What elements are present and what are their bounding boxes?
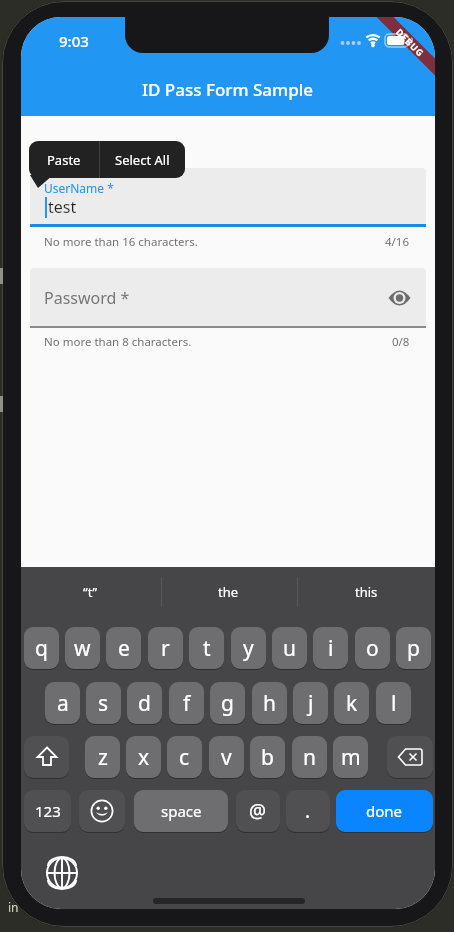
staticText: Password * <box>44 287 130 309</box>
staticText: 123 <box>35 801 61 821</box>
button[interactable]: m <box>333 736 368 778</box>
button[interactable] <box>30 268 426 326</box>
button[interactable]: t <box>189 627 224 669</box>
staticText: f <box>183 689 191 718</box>
button[interactable]: this <box>297 580 435 604</box>
staticText: UserName * <box>44 180 114 196</box>
staticText: i <box>328 634 334 663</box>
staticText: t <box>203 634 211 663</box>
button[interactable]: v <box>209 736 244 778</box>
staticText: a <box>57 689 69 718</box>
button[interactable]: q <box>24 627 59 669</box>
button[interactable]: p <box>396 627 431 669</box>
staticText: No more than 16 characters. <box>44 234 198 250</box>
staticText: s <box>98 689 109 718</box>
button[interactable]: l <box>376 682 411 724</box>
staticText: ID Pass Form Sample <box>142 78 314 101</box>
staticText: d <box>138 689 151 718</box>
staticText: q <box>35 634 48 663</box>
staticText: p <box>407 634 420 663</box>
button[interactable]: z <box>85 736 120 778</box>
button[interactable]: c <box>167 736 202 778</box>
button[interactable]: . <box>286 790 330 832</box>
staticText: 0/8 <box>392 334 410 350</box>
staticText: e <box>118 634 130 663</box>
staticText: b <box>261 743 274 772</box>
staticText: . <box>305 798 311 824</box>
button[interactable]: y <box>231 627 266 669</box>
button[interactable] <box>44 855 80 891</box>
staticText: l <box>391 689 397 718</box>
button[interactable]: w <box>65 627 100 669</box>
staticText: 4/16 <box>385 234 410 250</box>
staticText: y <box>243 634 254 663</box>
button[interactable]: n <box>292 736 327 778</box>
button[interactable] <box>79 790 125 832</box>
button[interactable] <box>30 168 426 224</box>
button[interactable]: u <box>272 627 307 669</box>
staticText: k <box>346 689 358 718</box>
staticText: n <box>303 743 316 772</box>
button[interactable]: Paste <box>29 141 99 178</box>
staticText: j <box>308 689 314 718</box>
button[interactable]: Select All <box>100 141 185 178</box>
button[interactable]: 123 <box>24 790 71 832</box>
staticText: o <box>366 634 379 663</box>
staticText: r <box>161 634 170 663</box>
button[interactable]: a <box>45 682 80 724</box>
staticText: c <box>179 743 190 772</box>
staticText: v <box>221 743 232 772</box>
staticText: No more than 8 characters. <box>44 334 192 350</box>
staticText: z <box>98 743 108 772</box>
button[interactable]: f <box>169 682 204 724</box>
button[interactable]: x <box>126 736 161 778</box>
button[interactable]: space <box>134 790 228 832</box>
button[interactable] <box>388 287 412 309</box>
staticText: g <box>221 689 234 718</box>
button[interactable]: e <box>106 627 141 669</box>
staticText: u <box>283 634 296 663</box>
button[interactable]: o <box>355 627 390 669</box>
staticText: x <box>138 743 150 772</box>
button[interactable]: k <box>334 682 369 724</box>
staticText: Paste <box>47 151 81 169</box>
button[interactable]: done <box>336 790 433 832</box>
staticText: w <box>74 634 91 663</box>
staticText: space <box>161 801 202 821</box>
staticText: test <box>48 196 77 218</box>
button[interactable] <box>24 736 69 778</box>
button[interactable]: s <box>86 682 121 724</box>
button[interactable]: the <box>159 580 297 604</box>
button[interactable]: g <box>210 682 245 724</box>
button[interactable]: d <box>127 682 162 724</box>
button[interactable]: @ <box>236 790 280 832</box>
button[interactable] <box>387 736 433 778</box>
button[interactable]: “t” <box>21 580 159 604</box>
staticText: “t” <box>83 583 98 601</box>
button[interactable]: h <box>252 682 287 724</box>
staticText: h <box>263 689 276 718</box>
staticText: 9:03 <box>59 31 89 51</box>
button[interactable]: j <box>293 682 328 724</box>
staticText: in <box>8 899 19 915</box>
staticText: the <box>218 583 239 601</box>
button[interactable]: i <box>313 627 348 669</box>
button[interactable]: b <box>250 736 285 778</box>
button[interactable]: r <box>148 627 183 669</box>
staticText: this <box>355 583 378 601</box>
staticText: m <box>341 743 361 772</box>
staticText: Select All <box>115 151 170 169</box>
staticText: DEBUG <box>394 26 427 59</box>
staticText: @ <box>249 798 267 824</box>
staticText: done <box>366 801 403 821</box>
